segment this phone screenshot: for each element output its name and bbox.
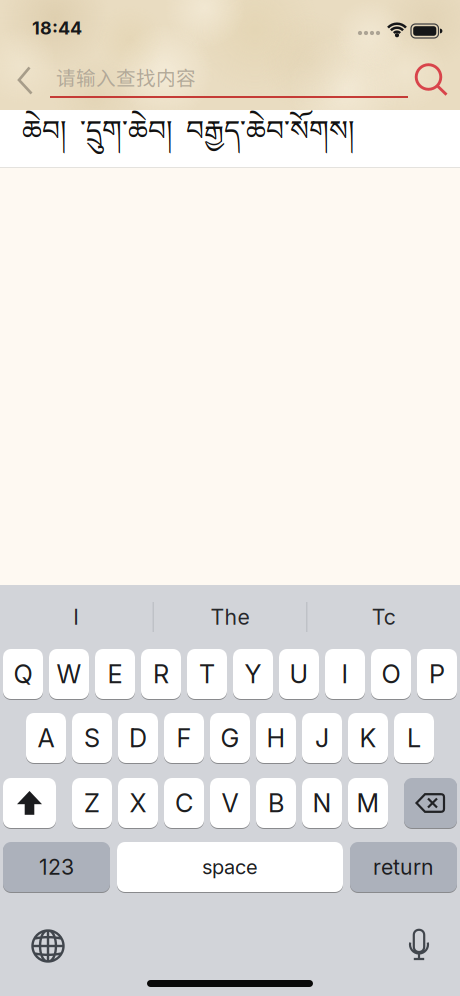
button[interactable]: Shift: [3, 778, 56, 828]
staticText: R: [153, 659, 169, 689]
staticText: The: [210, 604, 249, 630]
staticText: U: [289, 659, 308, 689]
staticText: Z: [84, 788, 100, 818]
staticText: Tc: [372, 604, 396, 630]
staticText: M: [356, 788, 379, 818]
button[interactable]: space: [117, 842, 343, 892]
button[interactable]: ཆེབ། ་དྲུག་ཆེབ། བརྒྱད་ཆེབ་སོགས།: [0, 110, 460, 167]
staticText: 18:44: [32, 17, 82, 39]
button[interactable]: The: [154, 585, 306, 649]
staticText: ཆེབ། ་དྲུག་ཆེབ། བརྒྱད་ཆེབ་སོགས།: [22, 99, 354, 178]
staticText: C: [175, 788, 193, 818]
button[interactable]: V: [210, 778, 250, 828]
button[interactable]: Next keyboard: [29, 927, 67, 965]
button[interactable]: W: [49, 649, 89, 699]
staticText: O: [381, 659, 400, 689]
button[interactable]: I: [0, 585, 153, 649]
staticText: P: [429, 659, 445, 689]
button[interactable]: return: [350, 842, 457, 892]
button[interactable]: Dictate: [407, 928, 431, 964]
button[interactable]: S: [72, 713, 112, 763]
button[interactable]: C: [164, 778, 204, 828]
button[interactable]: Q: [3, 649, 43, 699]
button[interactable]: D: [118, 713, 158, 763]
button[interactable]: Delete: [404, 778, 457, 828]
button[interactable]: P: [417, 649, 457, 699]
button[interactable]: H: [256, 713, 296, 763]
button[interactable]: R: [141, 649, 181, 699]
staticText: A: [37, 723, 54, 753]
button[interactable]: X: [118, 778, 158, 828]
button[interactable]: K: [348, 713, 388, 763]
staticText: K: [359, 723, 376, 753]
button[interactable]: 123: [3, 842, 110, 892]
staticText: L: [407, 723, 421, 753]
staticText: V: [221, 788, 238, 818]
button[interactable]: A: [26, 713, 66, 763]
staticText: D: [129, 723, 147, 753]
staticText: T: [199, 659, 215, 689]
staticText: S: [84, 723, 100, 753]
button[interactable]: U: [279, 649, 319, 699]
staticText: I: [73, 604, 79, 630]
staticText: G: [220, 723, 239, 753]
button[interactable]: M: [348, 778, 388, 828]
staticText: N: [312, 788, 331, 818]
button[interactable]: I: [325, 649, 365, 699]
staticText: Y: [244, 659, 261, 689]
staticText: J: [315, 723, 329, 753]
staticText: E: [107, 659, 122, 689]
button[interactable]: B: [256, 778, 296, 828]
button[interactable]: L: [394, 713, 434, 763]
button[interactable]: N: [302, 778, 342, 828]
button[interactable]: T: [187, 649, 227, 699]
button[interactable]: Search: [411, 60, 449, 98]
button[interactable]: Z: [72, 778, 112, 828]
staticText: Q: [13, 659, 32, 689]
staticText: W: [56, 659, 81, 689]
button[interactable]: Y: [233, 649, 273, 699]
staticText: B: [268, 788, 284, 818]
staticText: 请输入查找内容: [56, 63, 196, 91]
staticText: space: [202, 855, 258, 879]
button[interactable]: Tc: [307, 585, 460, 649]
button[interactable]: G: [210, 713, 250, 763]
staticText: H: [266, 723, 285, 753]
staticText: X: [129, 788, 146, 818]
staticText: return: [373, 854, 434, 880]
button[interactable]: J: [302, 713, 342, 763]
staticText: F: [176, 723, 191, 753]
staticText: 123: [39, 854, 74, 880]
button[interactable]: F: [164, 713, 204, 763]
staticText: I: [341, 659, 348, 689]
button[interactable]: O: [371, 649, 411, 699]
button[interactable]: E: [95, 649, 135, 699]
button[interactable]: Back: [14, 63, 34, 97]
button[interactable]: Search input: [50, 57, 408, 99]
